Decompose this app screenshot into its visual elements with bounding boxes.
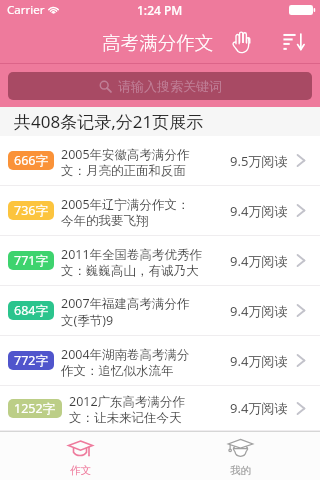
- button[interactable]: Sort: [276, 20, 310, 64]
- staticText: 文：巍巍高山，有诚乃大: [61, 263, 199, 279]
- staticText: 771字: [14, 252, 48, 269]
- staticText: 772字: [14, 352, 48, 369]
- staticText: 2004年湖南卷高考满分: [61, 346, 190, 363]
- staticText: 9.4万阅读: [230, 202, 288, 220]
- staticText: 736字: [14, 202, 48, 219]
- staticText: 2005年辽宁满分作文：: [61, 196, 190, 213]
- staticText: 9.5万阅读: [230, 152, 288, 170]
- staticText: 9.4万阅读: [230, 352, 288, 370]
- staticText: 作文: [70, 464, 91, 477]
- button[interactable]: 684字: [0, 286, 320, 336]
- button[interactable]: 1252字: [0, 386, 320, 431]
- staticText: 作文：追忆似水流年: [61, 363, 174, 379]
- staticText: 2012广东高考满分作: [69, 393, 186, 410]
- button[interactable]: 772字: [0, 336, 320, 386]
- staticText: 共408条记录,分21页展示: [14, 110, 204, 133]
- staticText: 9.4万阅读: [230, 399, 288, 417]
- staticText: 今年的我要飞翔: [61, 213, 149, 229]
- staticText: 请输入搜索关键词: [118, 78, 222, 94]
- staticText: Carrier: [7, 2, 45, 18]
- button[interactable]: 771字: [0, 236, 320, 286]
- staticText: 文：让未来记住今天: [69, 410, 182, 426]
- button[interactable]: 736字: [0, 186, 320, 236]
- staticText: 9.4万阅读: [230, 252, 288, 270]
- staticText: 1252字: [14, 400, 56, 417]
- button[interactable]: 请输入搜索关键词: [8, 72, 312, 100]
- staticText: 2007年福建高考满分作: [61, 295, 190, 312]
- staticText: 9.4万阅读: [230, 302, 288, 320]
- staticText: 1:24 PM: [137, 2, 183, 18]
- button[interactable]: 666字: [0, 136, 320, 186]
- staticText: 文(季节)9: [61, 312, 114, 329]
- staticText: 高考满分作文: [102, 29, 214, 56]
- staticText: 684字: [14, 302, 48, 319]
- staticText: 2005年安徽高考满分作: [61, 146, 190, 163]
- staticText: 文：月亮的正面和反面: [61, 163, 186, 179]
- staticText: 666字: [14, 152, 48, 169]
- button[interactable]: 我的: [160, 432, 320, 480]
- staticText: 2011年全国卷高考优秀作: [61, 246, 203, 263]
- button[interactable]: 作文: [0, 432, 160, 480]
- button[interactable]: Hand gesture: [224, 20, 258, 64]
- staticText: 我的: [230, 464, 251, 477]
